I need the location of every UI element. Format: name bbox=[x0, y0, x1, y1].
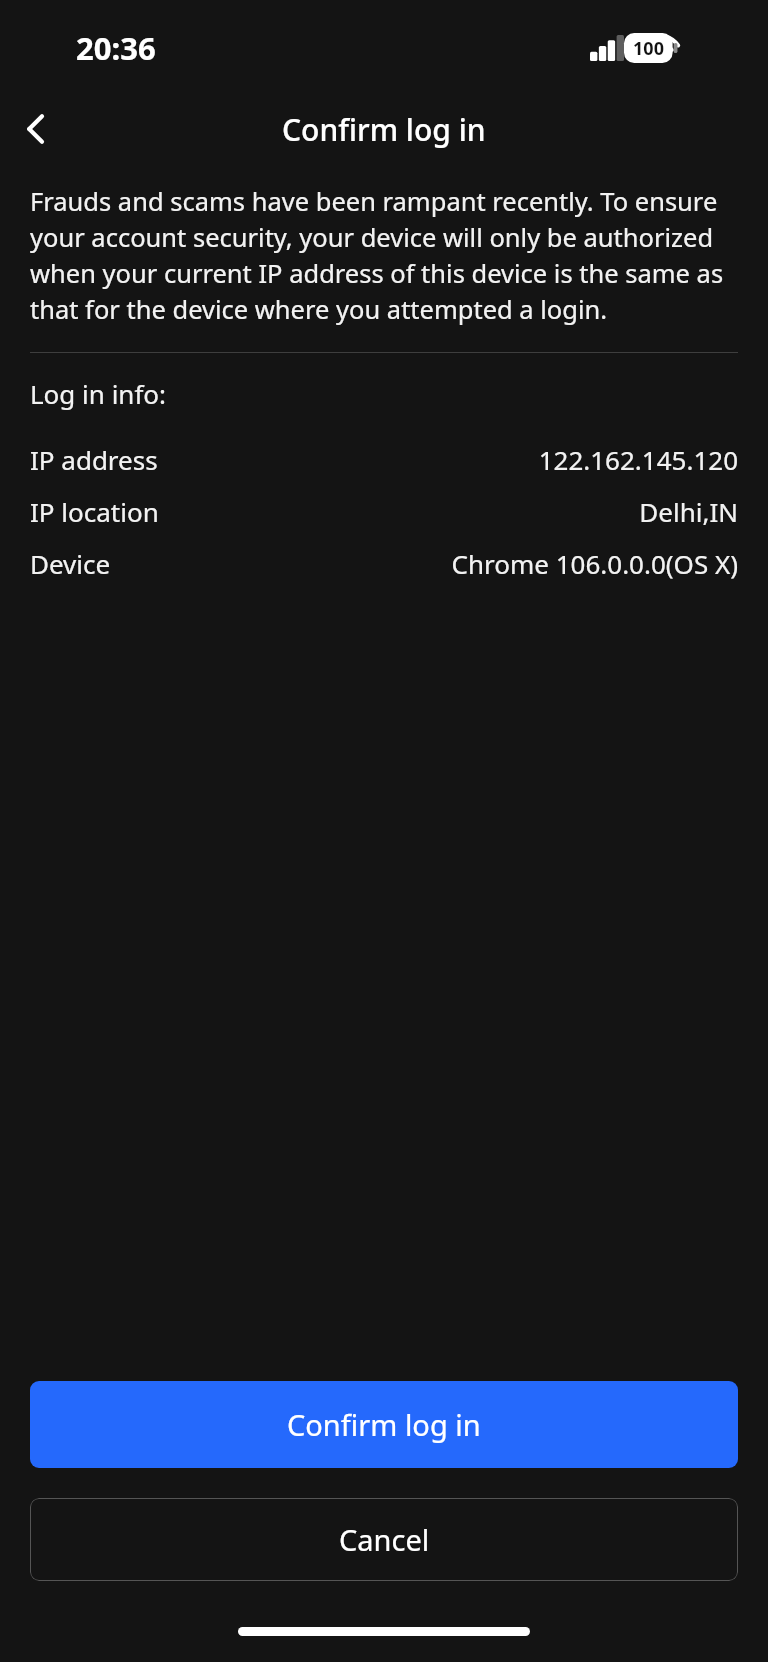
staticText: IP address bbox=[30, 442, 158, 477]
staticText: Chrome 106.0.0.0(OS X) bbox=[451, 546, 738, 581]
button[interactable]: Cancel bbox=[30, 1498, 738, 1581]
staticText: Log in info: bbox=[30, 376, 167, 411]
staticText: Cancel bbox=[339, 1520, 430, 1559]
staticText: 122.162.145.120 bbox=[538, 442, 738, 477]
staticText: Device bbox=[30, 546, 111, 581]
staticText: Delhi,IN bbox=[639, 494, 738, 529]
staticText: IP location bbox=[30, 494, 159, 529]
staticText: Frauds and scams have been rampant recen… bbox=[30, 184, 738, 326]
staticText: 100 bbox=[624, 36, 673, 61]
button[interactable]: Confirm log in bbox=[30, 1381, 738, 1468]
button[interactable]: Back bbox=[0, 96, 72, 162]
staticText: Confirm log in bbox=[287, 1405, 481, 1444]
staticText: 20:36 bbox=[76, 27, 156, 69]
staticText: Confirm log in bbox=[282, 109, 486, 150]
